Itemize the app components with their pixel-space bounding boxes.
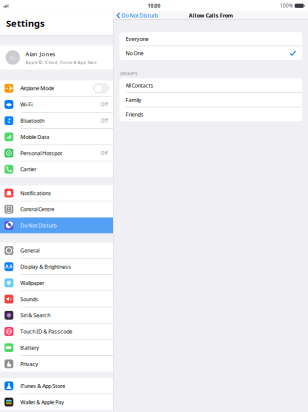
button[interactable]: Personal Hotspot <box>0 145 113 161</box>
staticText: General <box>20 247 39 254</box>
staticText: Off <box>100 101 107 108</box>
button[interactable]: Do Not Disturb <box>0 218 113 233</box>
staticText: All Contacts <box>125 82 153 89</box>
button[interactable]: Airplane Mode <box>0 80 113 96</box>
staticText: Wallet & Apple Pay <box>20 398 64 406</box>
staticText: Privacy <box>20 360 38 367</box>
staticText: Personal Hotspot <box>20 149 62 157</box>
staticText: AA <box>5 263 13 270</box>
button[interactable]: Control Centre <box>0 201 113 217</box>
staticText: Carrier <box>20 165 36 173</box>
button[interactable]: No One <box>119 46 302 60</box>
staticText: Do Not Disturb <box>121 12 157 19</box>
button[interactable]: Sounds <box>0 291 113 307</box>
staticText: Alan Jones <box>25 50 55 58</box>
button[interactable]: Wi-Fi <box>0 97 113 112</box>
staticText: Wallpaper <box>20 279 44 286</box>
staticText: Allow Calls From <box>189 12 233 19</box>
staticText: Bluetooth <box>20 117 44 124</box>
button[interactable]: Bluetooth <box>0 113 113 128</box>
button[interactable]: General <box>0 243 113 258</box>
staticText: Apple ID, iCloud, iTunes & App Store <box>25 59 96 65</box>
staticText: Touch ID & Passcode <box>20 328 72 335</box>
staticText: Notifications <box>20 189 51 197</box>
button[interactable]: AA <box>0 259 113 274</box>
button[interactable]: Notifications <box>0 185 113 201</box>
staticText: GROUPS <box>120 71 137 76</box>
staticText: Off <box>100 117 107 124</box>
staticText: iTunes & App Store <box>20 382 65 389</box>
button[interactable]: Everyone <box>119 32 302 46</box>
button[interactable]: Carrier <box>0 161 113 177</box>
staticText: Everyone <box>125 35 148 43</box>
button[interactable]: Siri & Search <box>0 307 113 323</box>
button[interactable]: Wallpaper <box>0 275 113 291</box>
button[interactable]: AJ <box>0 45 113 69</box>
staticText: Airplane Mode <box>20 84 54 92</box>
button[interactable]: Friends <box>119 107 302 121</box>
button[interactable]: Family <box>119 93 302 107</box>
staticText: Settings <box>6 17 45 30</box>
staticText: Sounds <box>20 295 38 303</box>
staticText: 10:00 <box>147 2 160 9</box>
staticText: Wi-Fi <box>20 101 32 108</box>
staticText: Off <box>100 150 107 156</box>
button[interactable]: Wallet & Apple Pay <box>0 394 113 410</box>
staticText: Control Centre <box>20 205 54 213</box>
button[interactable]: Mobile Data <box>0 129 113 145</box>
button[interactable]: Privacy <box>0 356 113 372</box>
staticText: No One <box>125 49 143 57</box>
staticText: Mobile Data <box>20 133 49 140</box>
staticText: Battery <box>20 344 39 351</box>
staticText: Friends <box>125 111 143 118</box>
button[interactable]: Battery <box>0 340 113 355</box>
button[interactable]: Do Not Disturb <box>116 10 157 20</box>
staticText: Display & Brightness <box>20 263 71 270</box>
staticText: AJ <box>10 54 16 61</box>
staticText: 100% <box>280 3 293 9</box>
button[interactable]: iTunes & App Store <box>0 378 113 394</box>
button[interactable]: Touch ID & Passcode <box>0 324 113 339</box>
staticText: Do Not Disturb <box>20 222 56 229</box>
staticText: Siri & Search <box>20 311 50 319</box>
staticText: Family <box>125 96 141 104</box>
button[interactable]: All Contacts <box>119 78 302 92</box>
